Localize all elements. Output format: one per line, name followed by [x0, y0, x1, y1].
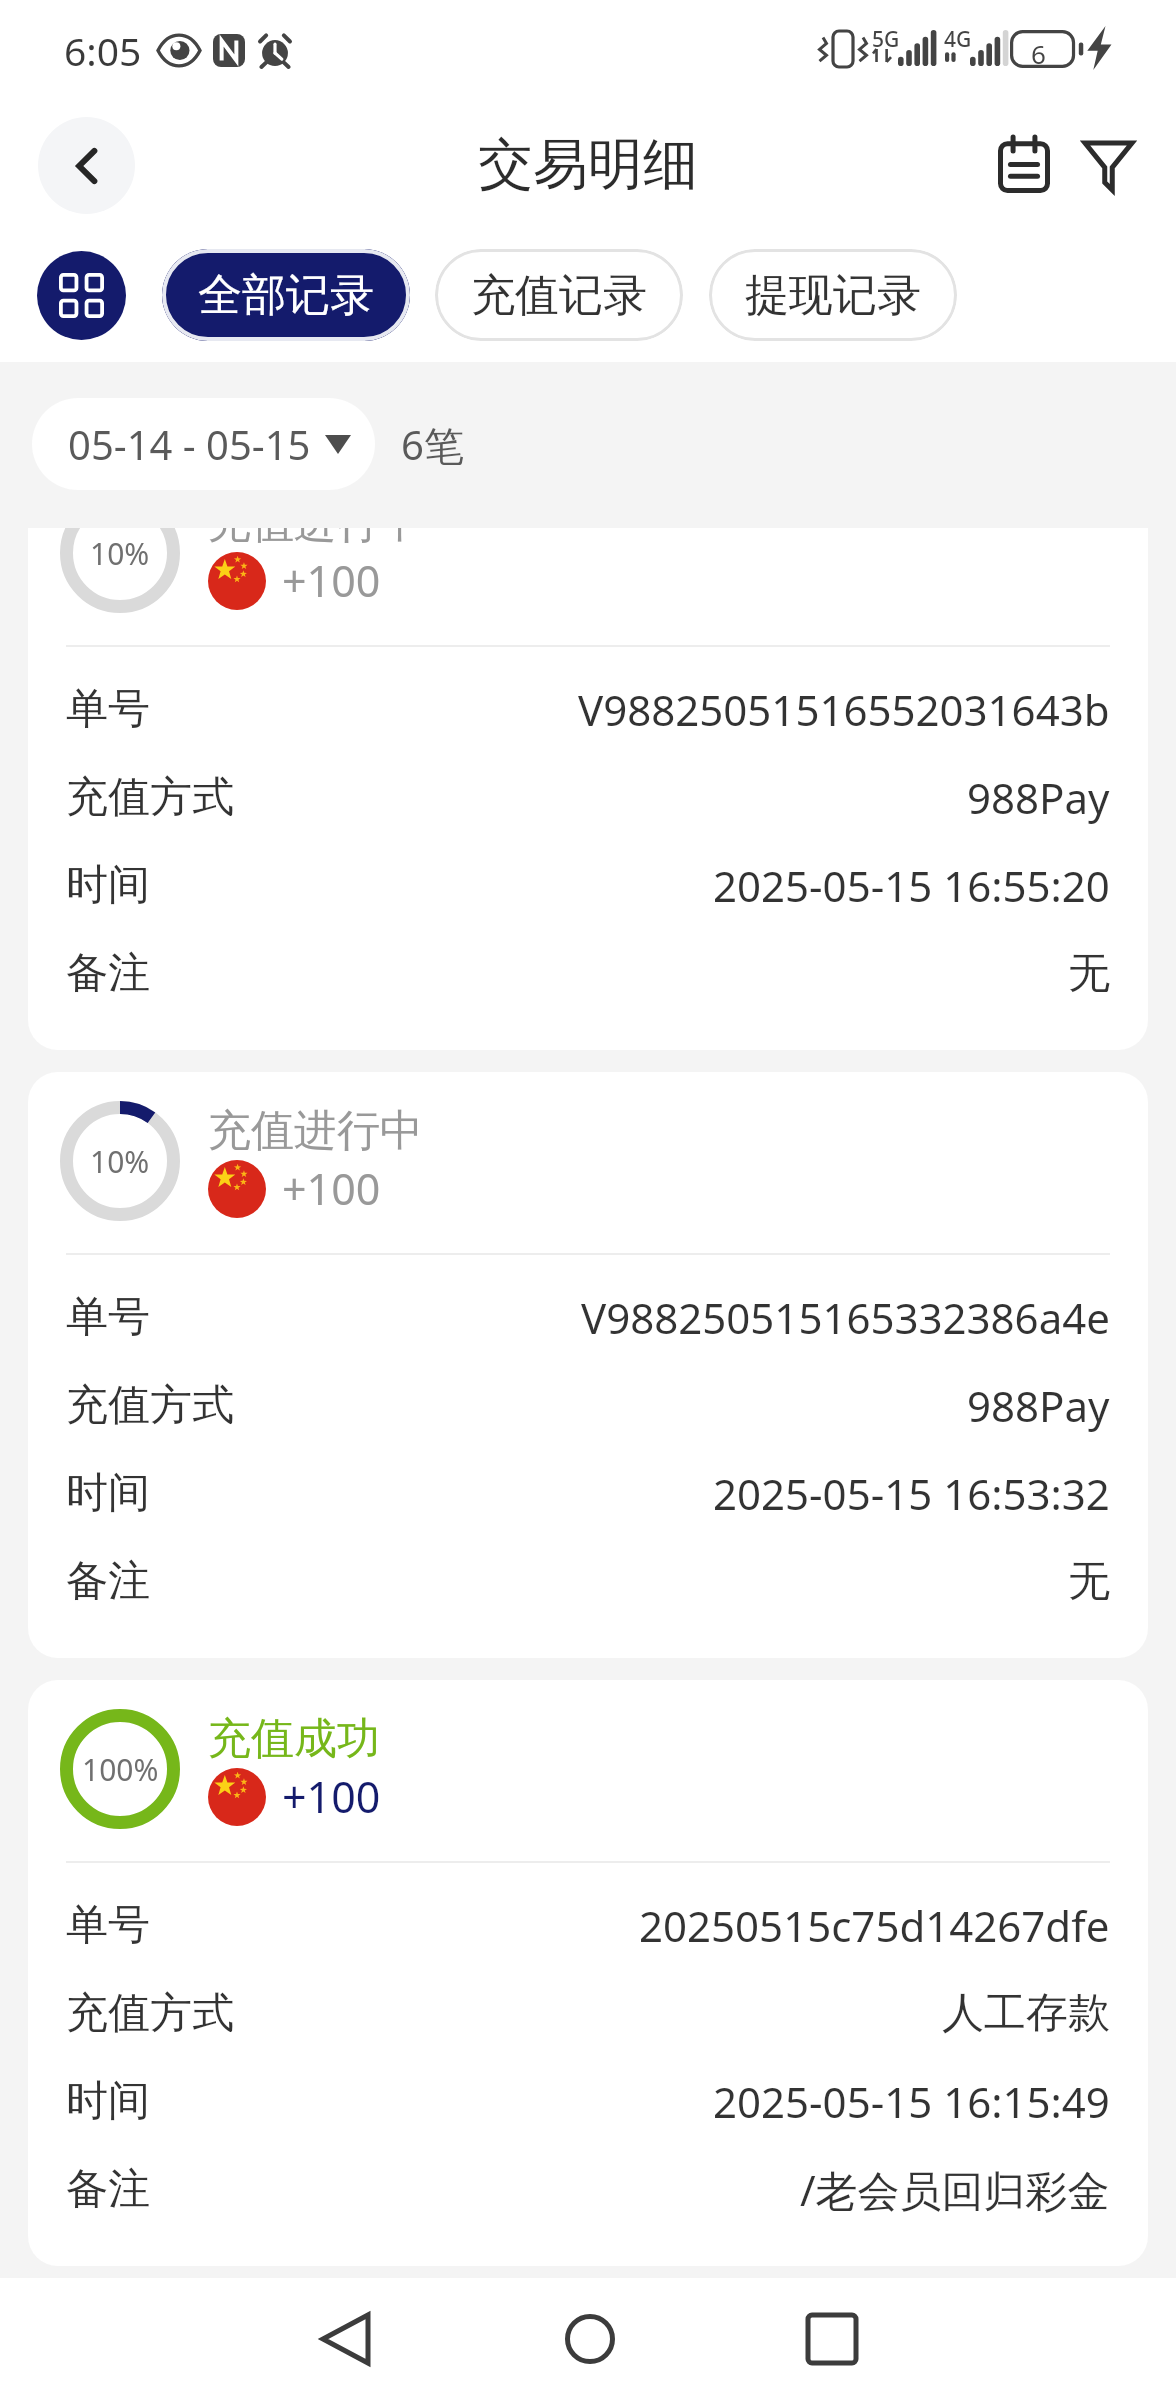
staticText: 充值成功 — [208, 1712, 380, 1766]
staticText: 4G — [944, 25, 972, 54]
staticText: 988Pay — [967, 1377, 1110, 1434]
staticText: 单号 — [66, 1291, 150, 1344]
staticText: 6笔 — [401, 417, 464, 472]
button[interactable]: 100% — [28, 1680, 1148, 2266]
staticText: +100 — [282, 551, 381, 610]
button[interactable]: 提现记录 — [709, 249, 957, 341]
staticText: 人工存款 — [942, 1987, 1110, 2040]
staticText: 100% — [82, 1749, 159, 1790]
staticText: 20250515c75d14267dfe — [639, 1897, 1110, 1954]
staticText: 2025-05-15 16:53:32 — [713, 1465, 1110, 1522]
staticText: 05-14 - 05-15 — [68, 417, 311, 471]
staticText: 交易明细 — [478, 130, 698, 199]
staticText: 2025-05-15 16:15:49 — [713, 2073, 1110, 2130]
staticText: 备注 — [66, 2163, 150, 2216]
staticText: 2025-05-15 16:55:20 — [713, 857, 1110, 914]
staticText: 全部记录 — [198, 268, 374, 323]
staticText: 提现记录 — [745, 268, 921, 323]
button[interactable]: Category — [37, 251, 126, 340]
staticText: 10% — [90, 1141, 150, 1182]
button[interactable]: Recents — [777, 2284, 887, 2394]
staticText: 6 — [1031, 36, 1046, 71]
staticText: 充值方式 — [66, 1379, 234, 1432]
staticText: 充值方式 — [66, 1987, 234, 2040]
staticText: 单号 — [66, 683, 150, 736]
staticText: 单号 — [66, 1899, 150, 1952]
button[interactable]: Back — [38, 117, 135, 214]
button[interactable]: 10% — [28, 1072, 1148, 1658]
button[interactable]: 充值记录 — [435, 249, 683, 341]
staticText: 充值记录 — [471, 268, 647, 323]
staticText: V988250515165332386a4e — [581, 1289, 1110, 1346]
staticText: /老会员回归彩金 — [800, 2161, 1110, 2218]
staticText: 10% — [90, 533, 150, 574]
button[interactable]: Filter — [1068, 125, 1148, 205]
staticText: 6:05 — [64, 24, 142, 77]
button[interactable]: 10% — [28, 528, 1148, 1050]
staticText: V98825051516552031643b — [578, 681, 1110, 738]
staticText: 时间 — [66, 1467, 150, 1520]
button[interactable]: 全部记录 — [162, 249, 410, 341]
staticText: 无 — [1068, 947, 1110, 1000]
staticText: 充值方式 — [66, 771, 234, 824]
staticText: +100 — [282, 1767, 381, 1826]
button[interactable]: Back — [289, 2284, 399, 2394]
staticText: 5G — [872, 25, 900, 54]
staticText: 备注 — [66, 1555, 150, 1608]
button[interactable]: Home — [535, 2284, 645, 2394]
button[interactable]: 05-14 - 05-15 — [32, 398, 375, 490]
staticText: 充值进行中 — [208, 1104, 423, 1158]
staticText: 备注 — [66, 947, 150, 1000]
staticText: +100 — [282, 1159, 381, 1218]
staticText: 988Pay — [967, 769, 1110, 826]
staticText: 时间 — [66, 2075, 150, 2128]
button[interactable]: Calendar — [984, 125, 1064, 205]
staticText: 无 — [1068, 1555, 1110, 1608]
staticText: 充值进行中 — [208, 528, 423, 550]
staticText: 时间 — [66, 859, 150, 912]
